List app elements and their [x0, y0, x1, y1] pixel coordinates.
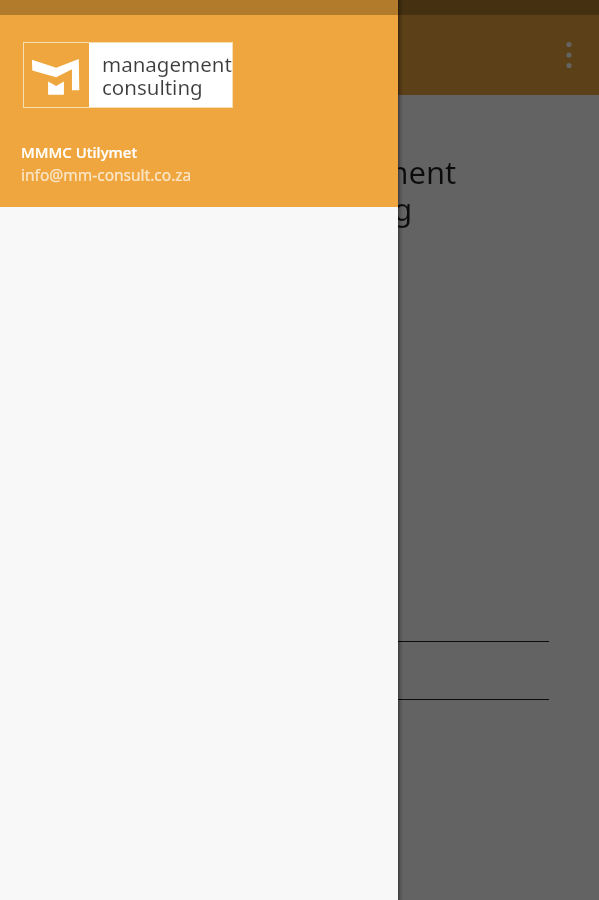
button[interactable]: Close navigation drawer — [0, 0, 599, 900]
staticText: info@mm-consult.co.za — [21, 164, 192, 185]
staticText: management consulting — [260, 151, 457, 230]
button[interactable]: management consulting — [0, 15, 398, 207]
staticText: management consulting — [102, 50, 232, 101]
button[interactable]: More options — [545, 31, 593, 79]
staticText: MMMC Utilymet — [21, 142, 138, 162]
